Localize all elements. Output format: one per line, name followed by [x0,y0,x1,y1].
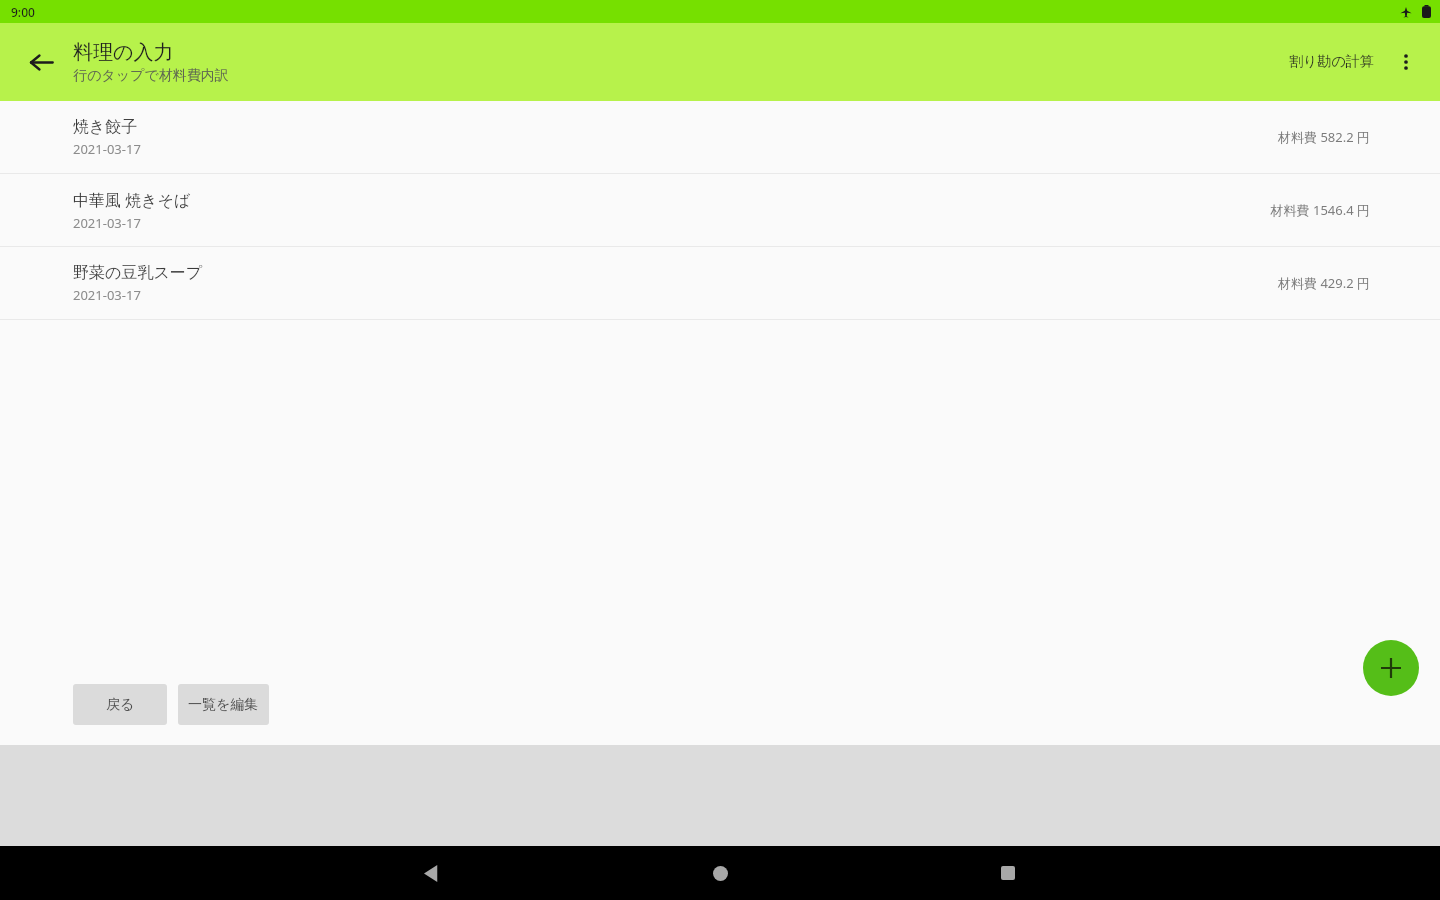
staticText: 中華風 焼きそば [73,189,191,211]
staticText: 一覧を編集 [188,696,259,714]
button[interactable]: More options [1384,40,1428,84]
staticText: 焼き餃子 [73,117,138,137]
button[interactable]: 一覧を編集 [178,684,269,725]
button[interactable]: Back [288,846,576,900]
staticText: 2021-03-17 [73,214,141,232]
staticText: 材料費 1546.4 円 [1270,201,1370,219]
staticText: 野菜の豆乳スープ [73,263,203,283]
button[interactable]: 戻る [73,684,167,725]
button[interactable]: 中華風 焼きそば [0,174,1440,246]
staticText: 割り勘の計算 [1289,53,1374,71]
staticText: 行のタップで材料費内訳 [73,67,229,85]
button[interactable]: 野菜の豆乳スープ [0,247,1440,319]
button[interactable]: Back [17,38,65,86]
staticText: 料理の入力 [73,40,174,65]
staticText: 材料費 429.2 円 [1278,274,1370,292]
button[interactable]: 割り勘の計算 [1279,45,1384,79]
button[interactable]: 焼き餃子 [0,101,1440,173]
button[interactable]: Add [1363,640,1419,696]
button[interactable]: Recent apps [864,846,1152,900]
staticText: 2021-03-17 [73,140,141,158]
staticText: 材料費 582.2 円 [1278,128,1370,146]
button[interactable]: Home [576,846,864,900]
staticText: 2021-03-17 [73,286,141,304]
staticText: 9:00 [11,4,35,20]
staticText: 戻る [106,696,135,714]
